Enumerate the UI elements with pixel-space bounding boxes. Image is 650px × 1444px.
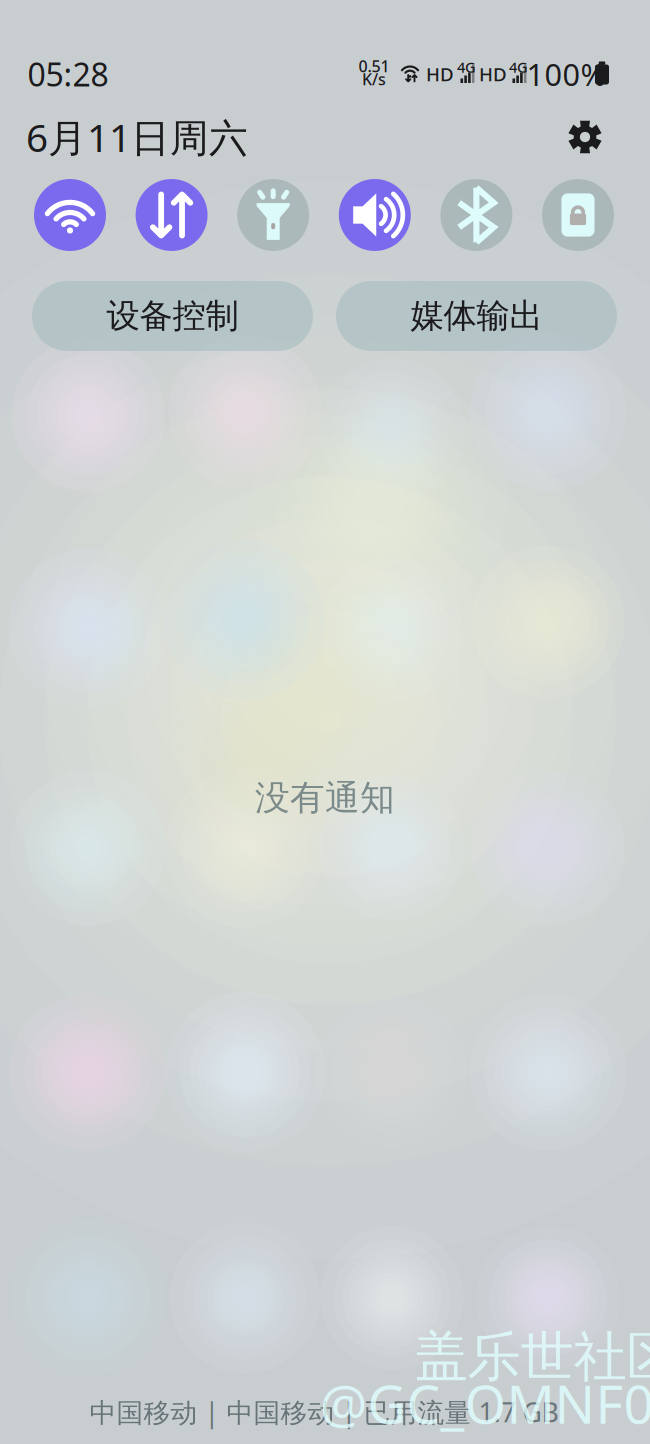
staticText: 没有通知 [255,777,395,819]
staticText: 0.51 [358,55,389,77]
staticText: HD [426,62,454,86]
staticText: 4G [457,57,476,77]
staticText: 中国移动 | 中国移动 | 已用流量 1.7 GB [89,1394,558,1430]
button[interactable]: 媒体输出 [336,281,617,351]
button[interactable]: 设置 [560,112,610,162]
button[interactable]: 声音 [339,179,411,251]
staticText: 设备控制 [106,295,238,336]
staticText: 盖乐世社区 [414,1324,650,1390]
staticText: K/s [362,68,386,90]
button[interactable]: 蓝牙 [440,179,512,251]
button[interactable]: 设备控制 [32,281,313,351]
staticText: HD [479,62,507,86]
button[interactable]: Wi-Fi [34,179,106,251]
button[interactable]: 手电筒 [237,179,309,251]
staticText: @GC_OMNF0D1 [319,1368,650,1438]
staticText: 媒体输出 [410,295,542,336]
button[interactable]: 自动旋转 [542,179,614,251]
staticText: 6月11日周六 [26,111,248,163]
button[interactable]: 移动数据 [136,179,208,251]
staticText: 100% [526,54,605,94]
staticText: 05:28 [27,53,108,95]
staticText: 4G [509,57,528,77]
